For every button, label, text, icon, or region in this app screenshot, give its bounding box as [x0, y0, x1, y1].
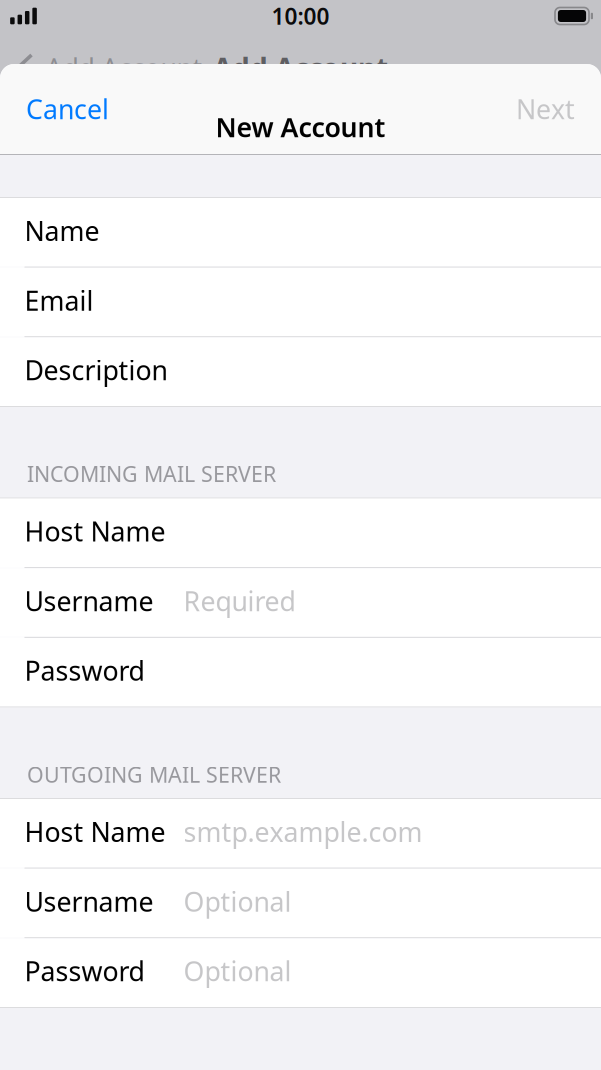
button[interactable]: Password [0, 638, 601, 707]
staticText: INCOMING MAIL SERVER [27, 460, 276, 488]
staticText: smtp.example.com [183, 814, 422, 849]
staticText: Email [24, 283, 93, 318]
button[interactable]: Next [506, 94, 585, 124]
staticText: Next [516, 91, 575, 127]
button[interactable]: Username [0, 568, 601, 637]
staticText: New Account [215, 109, 385, 145]
staticText: Name [24, 213, 99, 248]
button[interactable]: Cancel [16, 94, 119, 124]
staticText: 10:00 [271, 1, 329, 31]
staticText: Password [24, 953, 144, 989]
staticText: Optional [183, 884, 291, 919]
staticText: Username [24, 583, 153, 618]
staticText: Optional [183, 953, 291, 989]
staticText: Host Name [24, 814, 165, 849]
staticText: Add Account [213, 49, 388, 87]
button[interactable]: Host Name [0, 799, 601, 868]
button[interactable]: Username [0, 869, 601, 937]
staticText: Username [24, 884, 153, 919]
button[interactable]: Description [0, 337, 601, 406]
button[interactable]: Host Name [0, 498, 601, 567]
button[interactable]: Add Account [17, 50, 202, 86]
staticText: Required [183, 583, 295, 618]
button[interactable]: Email [0, 268, 601, 336]
staticText: Password [24, 653, 144, 688]
button[interactable]: Name [0, 198, 601, 267]
staticText: Cancel [26, 91, 109, 127]
button[interactable]: Password [0, 938, 601, 1007]
staticText: Host Name [24, 513, 165, 549]
staticText: OUTGOING MAIL SERVER [27, 760, 281, 788]
staticText: Description [24, 352, 167, 388]
staticText: Add Account [45, 50, 202, 86]
